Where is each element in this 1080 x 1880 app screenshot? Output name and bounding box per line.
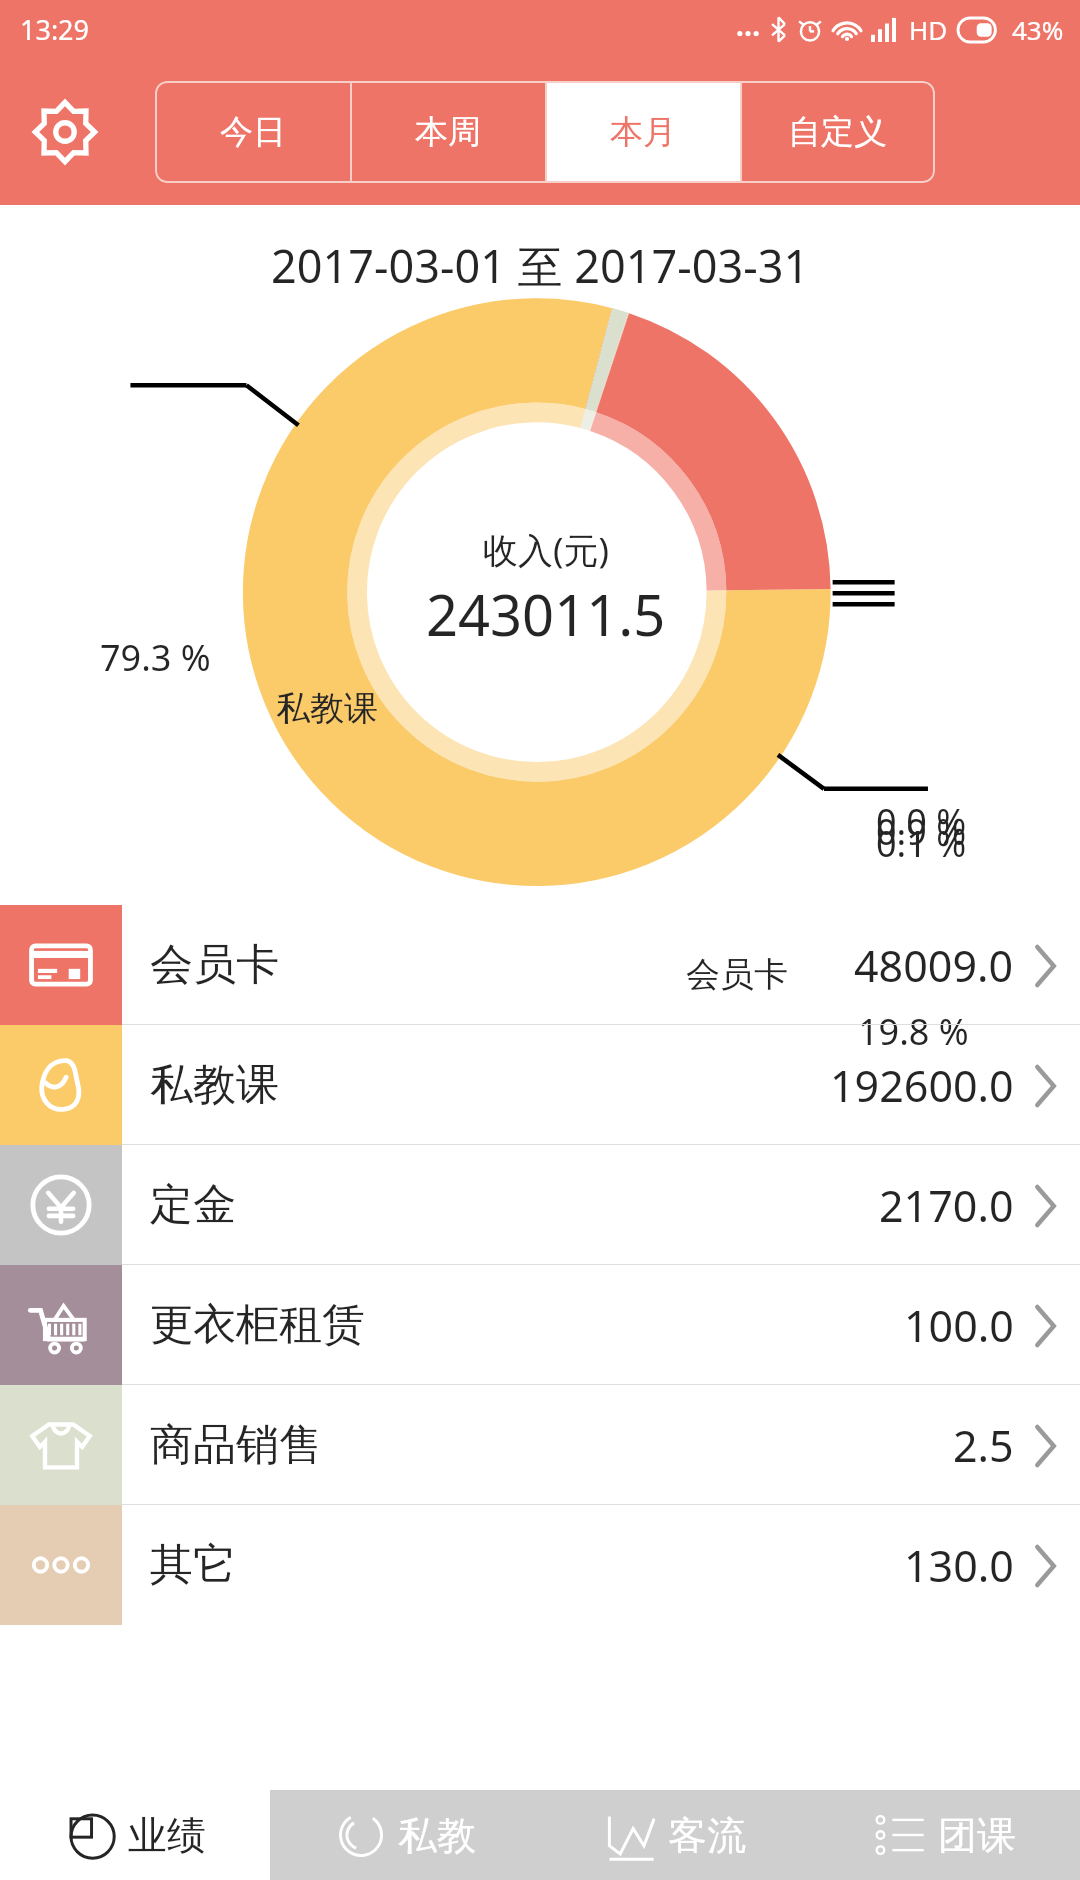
staticText: 会员卡 — [150, 938, 279, 992]
staticText: 业绩 — [128, 1811, 206, 1860]
staticText: 本周 — [415, 111, 481, 153]
staticText: 团课 — [938, 1811, 1016, 1860]
button[interactable]: 今日 — [155, 81, 350, 183]
staticText: 0.1 % — [876, 819, 967, 868]
button[interactable]: 业绩 — [0, 1790, 270, 1880]
button[interactable]: 本月 — [545, 81, 740, 183]
button[interactable]: 商品销售 — [0, 1385, 1080, 1505]
staticText: 43% — [1012, 12, 1064, 47]
button[interactable]: 客流 — [540, 1790, 810, 1880]
staticText: 0.9 % — [876, 807, 967, 856]
staticText: 2170.0 — [879, 1176, 1014, 1235]
button[interactable]: 更衣柜租赁 — [0, 1265, 1080, 1385]
staticText: 本月 — [610, 111, 676, 153]
staticText: 自定义 — [788, 111, 887, 153]
staticText: 2017-03-01 至 2017-03-31 — [271, 235, 810, 296]
staticText: 130.0 — [904, 1536, 1014, 1595]
staticText: 私教 — [398, 1811, 476, 1860]
staticText: 定金 — [150, 1178, 236, 1232]
button[interactable]: Settings — [24, 91, 106, 173]
staticText: 19.8 % — [858, 1007, 969, 1056]
button[interactable]: 私教课 — [0, 1025, 1080, 1145]
staticText: 13:29 — [20, 11, 90, 48]
staticText: 48009.0 — [854, 936, 1014, 995]
button[interactable]: 自定义 — [740, 81, 935, 183]
staticText: 今日 — [220, 111, 286, 153]
staticText: HD — [909, 12, 948, 47]
staticText: 私教课 — [150, 1058, 279, 1112]
staticText: 收入(元) — [483, 526, 610, 574]
button[interactable]: 定金 — [0, 1145, 1080, 1265]
staticText: 0.0 % — [876, 797, 967, 846]
staticText: 会员卡 — [686, 953, 788, 996]
staticText: 私教课 — [276, 687, 378, 730]
staticText: 客流 — [668, 1811, 746, 1860]
staticText: 243011.5 — [426, 576, 666, 652]
button[interactable]: 其它 — [0, 1505, 1080, 1625]
button[interactable]: 本周 — [350, 81, 545, 183]
staticText: 商品销售 — [150, 1418, 322, 1472]
staticText: 79.3 % — [100, 633, 211, 682]
staticText: 100.0 — [904, 1296, 1014, 1355]
button[interactable]: 团课 — [810, 1790, 1080, 1880]
button[interactable]: 会员卡 — [0, 905, 1080, 1025]
staticText: 192600.0 — [830, 1056, 1014, 1115]
staticText: 其它 — [150, 1538, 236, 1592]
staticText: 更衣柜租赁 — [150, 1298, 365, 1352]
button[interactable]: 私教 — [270, 1790, 540, 1880]
staticText: 2.5 — [953, 1416, 1014, 1475]
